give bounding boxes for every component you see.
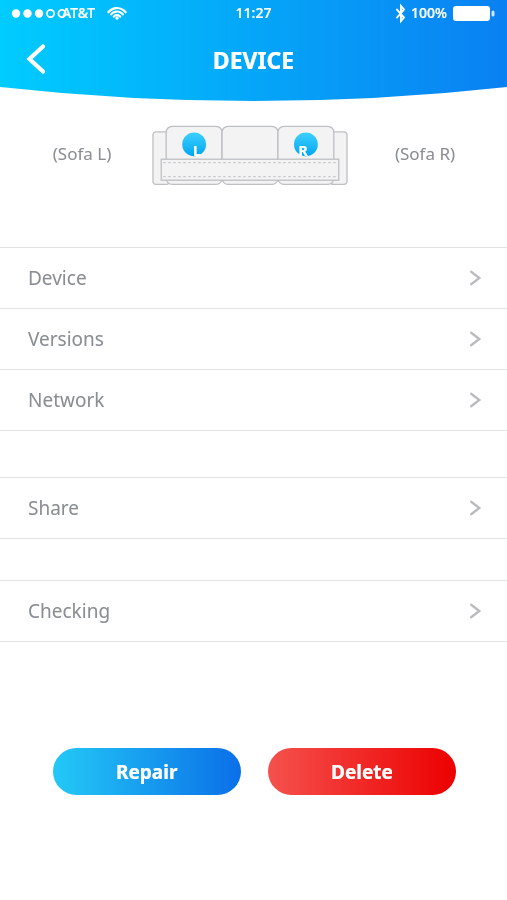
button[interactable]: Versions — [0, 309, 507, 369]
button[interactable]: Delete — [268, 748, 456, 795]
staticText: Device — [28, 265, 87, 291]
staticText: Network — [28, 387, 105, 413]
button[interactable]: Device — [0, 248, 507, 308]
staticText: 100% — [411, 3, 447, 22]
staticText: DEVICE — [0, 44, 507, 75]
button[interactable]: Repair — [53, 748, 241, 795]
staticText: Checking — [28, 598, 111, 624]
button[interactable]: Back — [6, 36, 62, 82]
staticText: AT&T — [62, 3, 96, 22]
staticText: Delete — [331, 759, 393, 785]
staticText: (Sofa R) — [365, 142, 485, 165]
button[interactable]: Network — [0, 370, 507, 430]
button[interactable]: Checking — [0, 581, 507, 641]
staticText: Versions — [28, 326, 104, 352]
staticText: (Sofa L) — [22, 142, 142, 165]
staticText: 11:27 — [0, 3, 507, 22]
staticText: L — [189, 141, 205, 160]
staticText: Repair — [116, 759, 178, 785]
button[interactable]: Share — [0, 478, 507, 538]
staticText: Share — [28, 495, 80, 521]
staticText: R — [295, 141, 311, 160]
